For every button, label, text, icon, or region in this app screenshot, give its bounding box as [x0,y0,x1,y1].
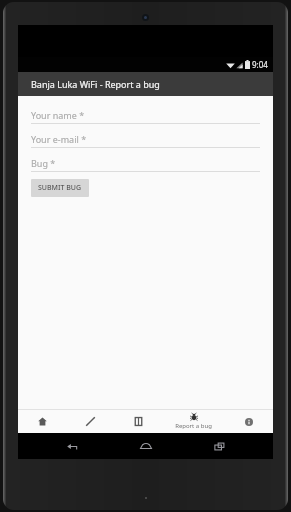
button[interactable]: Info [224,410,273,433]
button[interactable]: Home [137,437,155,455]
staticText: Banja Luka WiFi - Report a bug [31,78,160,90]
staticText: Bug * [31,157,56,169]
staticText: Report a bug [175,422,212,430]
staticText: 9:04 [252,59,268,70]
button[interactable]: Report a bug [163,410,224,433]
staticText: Your name * [31,109,85,121]
button[interactable]: Back [63,437,81,455]
staticText: SUBMIT BUG [38,183,82,193]
button[interactable]: Your name * [31,107,260,124]
button[interactable]: Edit [66,410,114,433]
button[interactable]: Your e-mail * [31,131,260,148]
staticText: Your e-mail * [31,133,87,145]
button[interactable]: Recent apps [210,437,228,455]
button[interactable]: Home [18,410,66,433]
button[interactable]: SUBMIT BUG [31,179,89,197]
button[interactable]: Bug * [31,155,260,172]
button[interactable]: Map [114,410,163,433]
